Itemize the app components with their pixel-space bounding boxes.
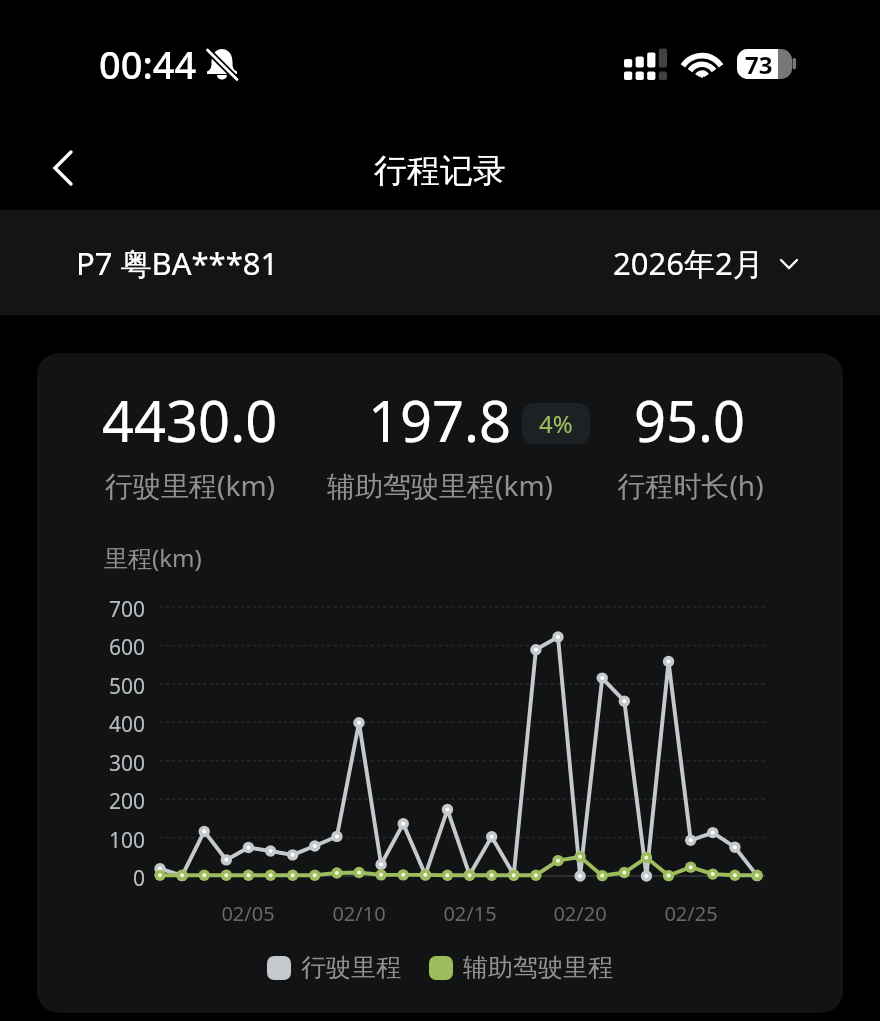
- staticText: P7 粤BA***81: [76, 242, 279, 284]
- staticText: 02/15: [420, 900, 520, 927]
- staticText: 200: [37, 787, 145, 816]
- staticText: 行驶里程(km): [105, 466, 275, 504]
- staticText: 95.0: [634, 382, 746, 458]
- staticText: 600: [37, 633, 145, 662]
- button[interactable]: 辅助驾驶里程: [429, 946, 613, 989]
- staticText: 500: [37, 672, 145, 701]
- button[interactable]: 行驶里程: [267, 946, 401, 989]
- staticText: 700: [37, 595, 145, 624]
- staticText: 197.8: [368, 382, 512, 458]
- staticText: 02/10: [309, 900, 409, 927]
- staticText: 0: [37, 864, 145, 893]
- button[interactable]: Back: [29, 134, 97, 202]
- staticText: 行驶里程: [301, 952, 401, 983]
- staticText: 400: [37, 710, 145, 739]
- staticText: 73: [745, 48, 773, 78]
- staticText: 里程(km): [104, 541, 202, 574]
- button[interactable]: 2026年2月: [613, 234, 802, 292]
- staticText: 100: [37, 826, 145, 855]
- staticText: 300: [37, 749, 145, 778]
- staticText: 4%: [539, 407, 573, 440]
- staticText: 辅助驾驶里程: [463, 952, 613, 983]
- staticText: 辅助驾驶里程(km): [327, 466, 553, 504]
- staticText: 02/20: [530, 900, 630, 927]
- staticText: 2026年2月: [613, 242, 764, 284]
- staticText: 02/05: [198, 900, 298, 927]
- staticText: 4430.0: [102, 382, 278, 458]
- staticText: 行程时长(h): [617, 466, 764, 504]
- staticText: 00:44: [99, 38, 197, 90]
- staticText: 02/25: [641, 900, 741, 927]
- staticText: 行程记录: [374, 150, 506, 192]
